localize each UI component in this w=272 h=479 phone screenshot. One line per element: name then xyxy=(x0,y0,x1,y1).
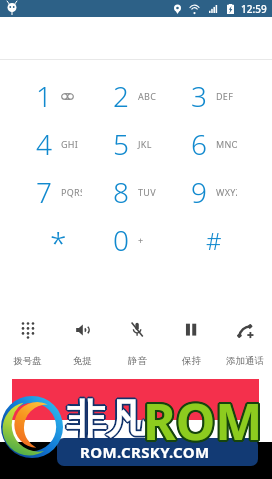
staticText: GHI xyxy=(61,138,79,150)
staticText: # xyxy=(206,224,222,257)
staticText: TUV xyxy=(138,186,156,198)
staticText: 3 xyxy=(191,77,207,115)
staticText: 非凡 xyxy=(67,395,147,445)
button[interactable]: Dialpad xyxy=(0,313,55,373)
staticText: 6 xyxy=(191,125,207,163)
staticText: ROM xyxy=(144,389,264,457)
staticText: ROM xyxy=(141,387,261,455)
staticText: 保持 xyxy=(182,355,201,367)
staticText: ROM xyxy=(145,387,265,455)
staticText: 拨号盘 xyxy=(13,355,42,367)
staticText: 非凡 xyxy=(66,396,146,446)
staticText: 非凡 xyxy=(66,392,146,442)
staticText: 免提 xyxy=(73,355,92,367)
staticText: ROM.CRSKY.COM xyxy=(80,442,210,462)
staticText: 静音 xyxy=(128,355,147,367)
staticText: 5 xyxy=(113,125,129,163)
button[interactable]: # xyxy=(175,216,253,264)
staticText: 非凡 xyxy=(68,394,148,444)
staticText: 非凡 xyxy=(67,393,147,443)
other: Notification xyxy=(7,2,17,15)
button[interactable]: 1 xyxy=(20,72,97,120)
staticText: WXYZ xyxy=(216,186,237,198)
button[interactable]: 6 xyxy=(175,120,253,168)
button[interactable]: 3 xyxy=(175,72,253,120)
staticText: 非凡 xyxy=(67,395,147,445)
staticText: 8 xyxy=(113,173,129,211)
staticText: ROM xyxy=(141,386,261,454)
staticText: ROM xyxy=(142,389,262,457)
staticText: 非凡 xyxy=(67,393,147,443)
other: Dialpad xyxy=(19,321,37,339)
button[interactable]: * xyxy=(20,216,97,264)
staticText: ABC xyxy=(138,90,157,102)
staticText: ROM xyxy=(145,386,265,454)
staticText: ROM xyxy=(141,388,261,456)
button[interactable]: 7 xyxy=(20,168,97,216)
staticText: MNO xyxy=(216,138,237,150)
staticText: 添加通话 xyxy=(226,355,264,367)
staticText: ROM xyxy=(142,385,262,453)
button[interactable]: Hold xyxy=(164,313,218,373)
staticText: ROM xyxy=(144,385,264,453)
other: Speaker xyxy=(74,321,92,339)
staticText: ROM xyxy=(143,387,263,455)
staticText: 非凡 xyxy=(65,395,145,445)
staticText: * xyxy=(50,222,67,263)
staticText: 1 xyxy=(36,77,52,115)
staticText: 非凡 xyxy=(64,394,144,444)
other: Hold xyxy=(182,321,200,339)
button[interactable]: Mute xyxy=(110,313,164,373)
staticText: DEF xyxy=(216,90,234,102)
button[interactable]: 8 xyxy=(97,168,175,216)
staticText: ROM xyxy=(145,388,265,456)
staticText: 非凡 xyxy=(65,395,145,445)
other: Add call xyxy=(236,321,254,339)
button[interactable]: Add call xyxy=(218,313,272,373)
staticText: 9 xyxy=(191,173,207,211)
staticText: 0 xyxy=(113,221,129,259)
staticText: 4 xyxy=(36,125,52,163)
staticText: 非凡 xyxy=(65,393,145,443)
other: Mute xyxy=(128,321,146,339)
button[interactable]: 9 xyxy=(175,168,253,216)
staticText: ROM xyxy=(143,389,263,457)
staticText: + xyxy=(138,234,144,246)
staticText: 非凡 xyxy=(66,394,146,444)
button[interactable]: 0 xyxy=(97,216,175,264)
staticText: PQRS xyxy=(61,186,82,198)
staticText: 7 xyxy=(36,173,52,211)
button[interactable]: 5 xyxy=(97,120,175,168)
staticText: 2 xyxy=(113,77,129,115)
staticText: 12:59 xyxy=(241,2,267,16)
button[interactable]: 2 xyxy=(97,72,175,120)
staticText: ROM xyxy=(143,385,263,453)
staticText: JKL xyxy=(138,138,152,150)
staticText: 非凡 xyxy=(65,393,145,443)
button[interactable]: 4 xyxy=(20,120,97,168)
button[interactable]: Speaker xyxy=(55,313,110,373)
